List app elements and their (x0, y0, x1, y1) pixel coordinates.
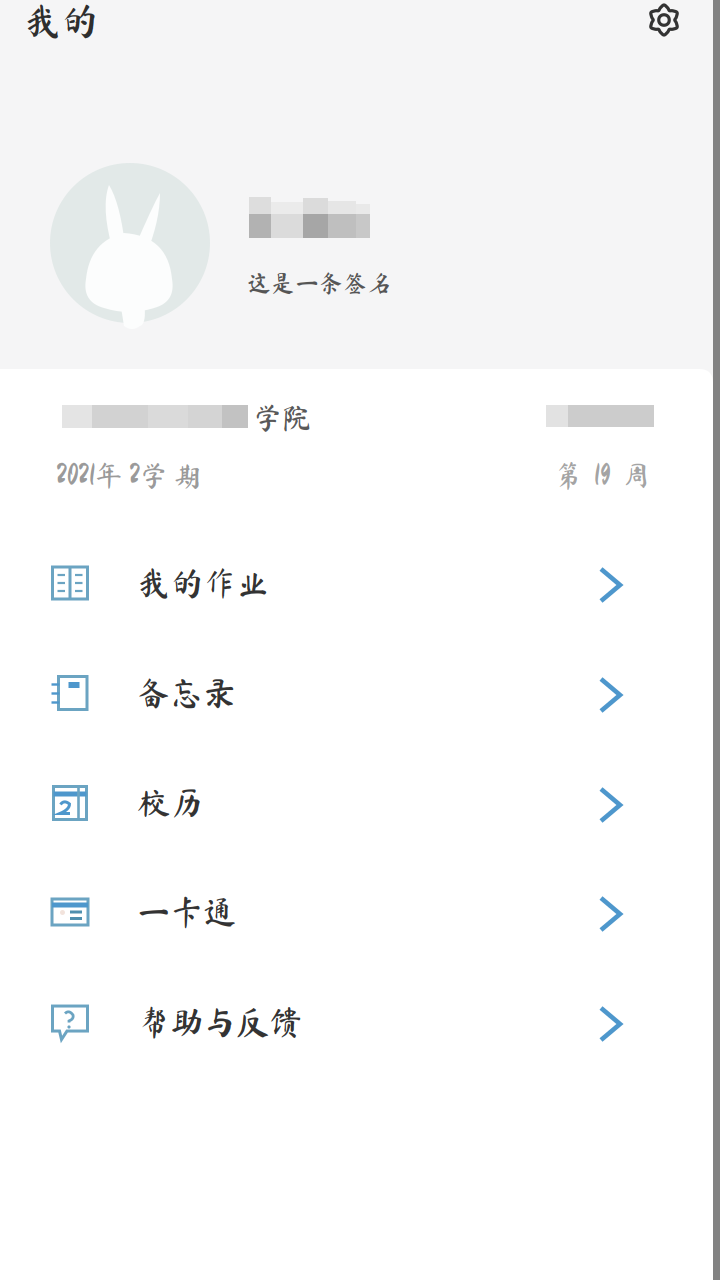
button[interactable]: 我的作业 (0, 528, 713, 638)
staticText: 这是一条签名 (247, 271, 391, 295)
staticText: 2021年 2学 期 (56, 461, 202, 489)
button[interactable]: 一卡通 (0, 857, 713, 967)
staticText: 我的作业 (137, 566, 269, 599)
staticText: 备忘录 (137, 676, 236, 709)
staticText: 校历 (137, 786, 203, 819)
staticText: 第 19 周 (554, 461, 650, 489)
staticText: 学院 (253, 403, 311, 432)
staticText: 一卡通 (137, 895, 236, 928)
button[interactable]: 校历 (0, 748, 713, 858)
staticText: 我的 (24, 2, 98, 39)
staticText: 帮助与反馈 (137, 1005, 302, 1038)
button[interactable]: 个人资料 (0, 163, 713, 369)
button[interactable]: Settings (647, 3, 681, 37)
button[interactable]: 帮助与反馈 (0, 967, 713, 1077)
button[interactable]: 备忘录 (0, 638, 713, 748)
